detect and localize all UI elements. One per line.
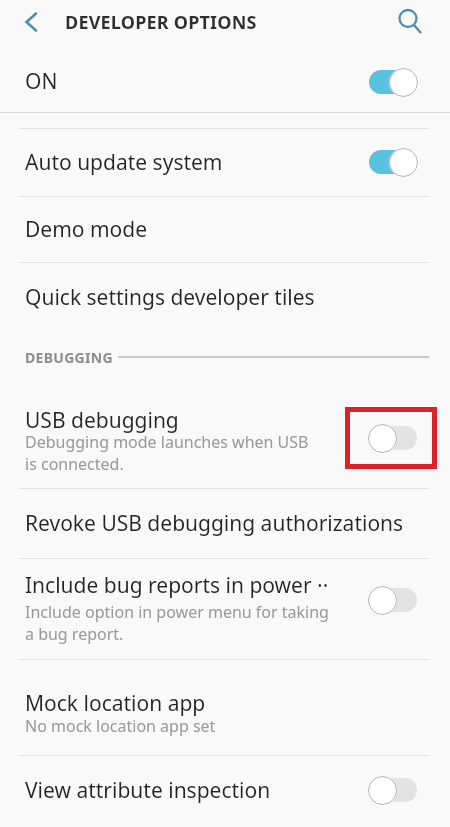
- button[interactable]: [0, 558, 450, 659]
- staticText: View attribute inspection: [25, 776, 271, 805]
- staticText: Quick settings developer tiles: [25, 283, 315, 312]
- button[interactable]: [368, 423, 418, 453]
- staticText: ON: [25, 67, 58, 96]
- button[interactable]: [390, 2, 434, 42]
- staticText: Include option in power menu for taking …: [25, 601, 329, 645]
- button[interactable]: [368, 147, 418, 177]
- button[interactable]: [0, 45, 450, 112]
- button[interactable]: [0, 488, 450, 558]
- staticText: Auto update system: [25, 148, 223, 177]
- staticText: Include bug reports in power ··: [25, 571, 329, 600]
- staticText: DEVELOPER OPTIONS: [65, 10, 257, 35]
- staticText: Demo mode: [25, 215, 148, 244]
- button[interactable]: [0, 262, 450, 330]
- button[interactable]: [0, 659, 450, 755]
- button[interactable]: [0, 385, 450, 488]
- staticText: No mock location app set: [25, 715, 216, 737]
- button[interactable]: [368, 775, 418, 805]
- button[interactable]: [368, 67, 418, 97]
- button[interactable]: [0, 128, 450, 196]
- button[interactable]: [0, 755, 450, 827]
- staticText: Mock location app: [25, 689, 206, 718]
- button[interactable]: [0, 196, 450, 262]
- staticText: Revoke USB debugging authorizations: [25, 509, 404, 538]
- staticText: DEBUGGING: [25, 348, 113, 367]
- staticText: Debugging mode launches when USB is conn…: [25, 431, 309, 475]
- button[interactable]: [368, 585, 418, 615]
- button[interactable]: [10, 2, 50, 42]
- staticText: USB debugging: [25, 406, 179, 435]
